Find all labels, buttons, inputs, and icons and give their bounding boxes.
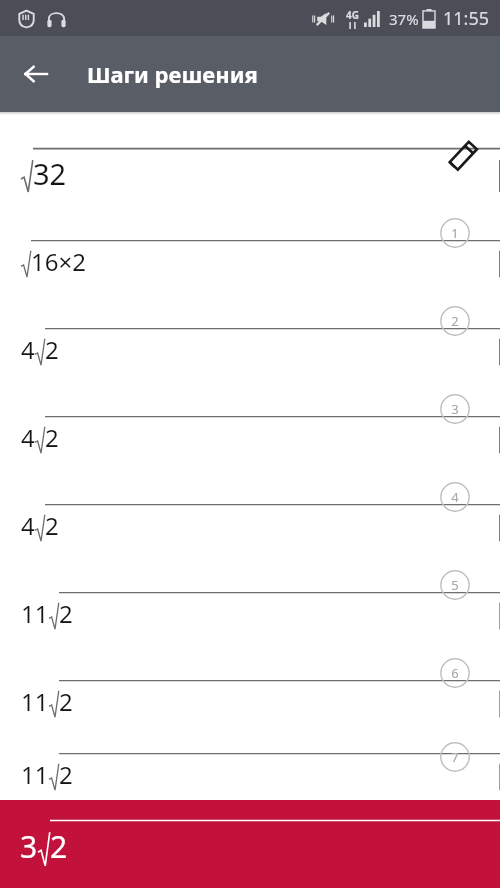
staticText: 11:55	[443, 6, 490, 31]
staticText: 2	[451, 312, 459, 330]
button[interactable]: 11	[0, 633, 500, 721]
staticText: 1	[451, 224, 459, 242]
button[interactable]: 4	[0, 369, 500, 457]
staticText: 4	[21, 333, 35, 366]
staticText: 11	[21, 597, 49, 630]
button[interactable]: 4	[0, 281, 500, 369]
staticText: 16×2	[31, 245, 86, 278]
staticText: 5	[451, 576, 459, 594]
staticText: 2	[45, 509, 59, 542]
staticText: 6	[451, 664, 459, 682]
button[interactable]: 4	[0, 457, 500, 545]
staticText: 4G	[346, 8, 359, 22]
staticText: 7	[451, 748, 459, 766]
button[interactable]: Назад	[16, 54, 56, 94]
staticText: 3	[451, 400, 459, 418]
staticText: 2	[45, 421, 59, 454]
staticText: 2	[50, 826, 68, 867]
staticText: 2	[45, 333, 59, 366]
staticText: Шаги решения	[87, 59, 258, 89]
staticText: 11	[21, 685, 49, 718]
staticText: 32	[33, 154, 67, 193]
button[interactable]: Изменить	[440, 130, 488, 178]
button[interactable]: 16×2	[0, 193, 500, 281]
staticText: 4	[21, 421, 35, 454]
staticText: 2	[59, 597, 73, 630]
button[interactable]: 3	[0, 800, 500, 888]
button[interactable]: 11	[0, 721, 500, 800]
staticText: 37%	[389, 9, 419, 29]
staticText: 3	[20, 826, 38, 867]
staticText: 2	[59, 758, 73, 791]
staticText: 11	[21, 758, 49, 791]
staticText: 4	[451, 488, 459, 506]
button[interactable]: 11	[0, 545, 500, 633]
staticText: 2	[59, 685, 73, 718]
staticText: 4	[21, 509, 35, 542]
